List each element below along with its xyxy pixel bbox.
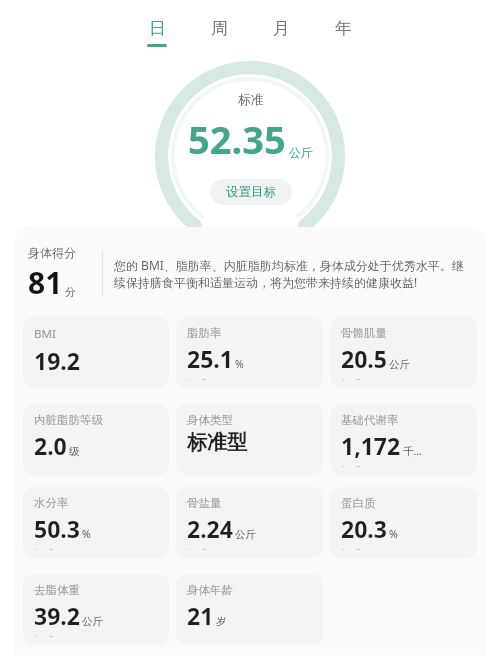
staticText: 81 xyxy=(28,262,63,303)
staticText: 年 xyxy=(335,18,352,39)
staticText: 设置目标 xyxy=(226,184,276,200)
staticText: 1,172 xyxy=(341,430,401,461)
staticText: 50.3 xyxy=(34,513,80,544)
staticText: 20.3 xyxy=(341,513,387,544)
button[interactable]: 月 xyxy=(257,14,305,51)
staticText: 蛋白质 xyxy=(341,496,376,510)
staticText: 标准 xyxy=(341,377,363,380)
staticText: 2.24 xyxy=(187,513,233,544)
staticText: 标准 xyxy=(187,377,209,380)
button[interactable]: 身体年龄 xyxy=(176,574,323,645)
staticText: 岁 xyxy=(216,615,227,628)
button[interactable]: 脂肪率 xyxy=(176,317,323,388)
staticText: 公斤 xyxy=(235,528,256,541)
staticText: 52.35 xyxy=(188,113,286,165)
staticText: 分 xyxy=(65,285,76,299)
staticText: 身体得分 xyxy=(28,245,76,260)
staticText: 月 xyxy=(273,18,290,39)
staticText: 去脂体重 xyxy=(34,583,80,597)
staticText: 标准 xyxy=(341,547,363,550)
staticText: 标准 xyxy=(187,547,209,550)
staticText: 身体年龄 xyxy=(187,583,233,597)
button[interactable]: 水分率 xyxy=(23,487,169,558)
staticText: % xyxy=(82,527,91,541)
staticText: 骨盐量 xyxy=(187,496,222,510)
button[interactable]: 骨骼肌量 xyxy=(330,317,477,388)
staticText: 标准 xyxy=(341,464,363,467)
staticText: 25.1 xyxy=(187,343,233,374)
button[interactable]: 蛋白质 xyxy=(330,487,477,558)
staticText: 周 xyxy=(211,18,228,39)
staticText: 标准型 xyxy=(187,430,247,455)
staticText: % xyxy=(389,527,398,541)
button[interactable]: 基础代谢率 xyxy=(330,404,477,475)
staticText: 日 xyxy=(149,18,166,39)
staticText: 标准 xyxy=(34,634,56,637)
staticText: 水分率 xyxy=(34,496,69,510)
button[interactable]: 设置目标 xyxy=(210,179,292,205)
staticText: 2.0 xyxy=(34,430,67,461)
staticText: 公斤 xyxy=(389,358,410,371)
button[interactable]: 身体类型 xyxy=(176,404,323,475)
button[interactable]: 内脏脂肪等级 xyxy=(23,404,169,475)
staticText: 公斤 xyxy=(289,145,313,160)
staticText: 公斤 xyxy=(82,615,103,628)
staticText: 级 xyxy=(69,445,80,458)
staticText: 您的 BMI、脂肪率、内脏脂肪均标准，身体成分处于优秀水平。继续保持膳食平衡和适… xyxy=(114,257,472,291)
button[interactable]: 日 xyxy=(133,14,181,51)
staticText: 内脏脂肪等级 xyxy=(34,413,103,427)
button[interactable]: 周 xyxy=(195,14,243,51)
staticText: 身体类型 xyxy=(187,413,233,427)
button[interactable]: 去脂体重 xyxy=(23,574,169,645)
staticText: 标准 xyxy=(34,547,56,550)
staticText: 骨骼肌量 xyxy=(341,326,387,340)
staticText: 20.5 xyxy=(341,343,387,374)
staticText: BMI xyxy=(34,326,56,342)
button[interactable]: BMI xyxy=(23,317,169,388)
staticText: % xyxy=(235,357,244,371)
staticText: 21 xyxy=(187,600,214,631)
staticText: 脂肪率 xyxy=(187,326,222,340)
staticText: 39.2 xyxy=(34,600,80,631)
button[interactable]: 年 xyxy=(319,14,367,51)
staticText: 千… xyxy=(403,444,422,458)
staticText: 标准 xyxy=(238,91,264,107)
staticText: 基础代谢率 xyxy=(341,413,399,427)
button[interactable]: 骨盐量 xyxy=(176,487,323,558)
staticText: 19.2 xyxy=(34,345,80,376)
